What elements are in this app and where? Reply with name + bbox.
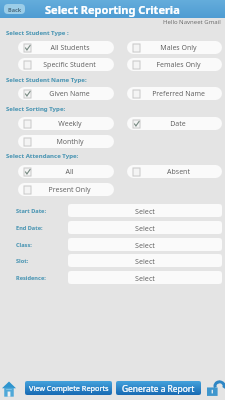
button[interactable]: Class: <box>0 238 225 251</box>
button[interactable]: Residence: <box>0 271 225 284</box>
button[interactable]: View Complete Reports <box>25 381 112 395</box>
button[interactable]: All <box>18 165 114 178</box>
button[interactable]: Slot: <box>0 254 225 267</box>
staticText: Select Sorting Type: <box>6 105 66 113</box>
staticText: Present Only <box>48 185 91 195</box>
button[interactable]: Specific Student <box>18 58 114 71</box>
button[interactable]: Generate a Report <box>116 381 201 395</box>
staticText: All Students <box>50 43 90 53</box>
button[interactable]: Home <box>1 380 16 397</box>
button[interactable]: End Date: <box>0 221 225 234</box>
staticText: Select Reporting Criteria <box>45 2 180 17</box>
staticText: Date <box>170 119 186 129</box>
staticText: End Date: <box>16 224 68 232</box>
staticText: Select <box>135 206 155 216</box>
staticText: Select <box>135 223 155 233</box>
staticText: Select <box>135 273 155 283</box>
staticText: All <box>65 167 74 177</box>
staticText: Select <box>135 256 155 266</box>
button[interactable]: Preferred Name <box>127 87 222 100</box>
staticText: Select Student Name Type: <box>6 76 87 84</box>
staticText: Weekly <box>58 119 82 129</box>
button[interactable]: Given Name <box>18 87 114 100</box>
button[interactable]: Females Only <box>127 58 222 71</box>
staticText: Residence: <box>16 274 68 282</box>
staticText: Select Student Type : <box>6 29 69 37</box>
staticText: Generate a Report <box>122 383 195 394</box>
staticText: Absent <box>167 167 190 177</box>
staticText: Specific Student <box>43 60 96 70</box>
button[interactable]: Date <box>127 117 222 130</box>
staticText: Select Attendance Type: <box>6 152 79 160</box>
button[interactable]: Unlock <box>204 379 225 397</box>
staticText: Select <box>135 240 155 250</box>
button[interactable]: Start Date: <box>0 204 225 217</box>
staticText: Slot: <box>16 257 68 265</box>
staticText: Given Name <box>49 89 90 99</box>
staticText: Preferred Name <box>152 89 205 99</box>
staticText: View Complete Reports <box>29 383 109 393</box>
button[interactable]: Males Only <box>127 41 222 54</box>
staticText: Monthly <box>56 137 84 147</box>
button[interactable]: All Students <box>18 41 114 54</box>
button[interactable]: Back <box>4 4 25 14</box>
staticText: Back <box>8 6 22 13</box>
staticText: Females Only <box>156 60 201 70</box>
staticText: Class: <box>16 241 68 249</box>
button[interactable]: Present Only <box>18 183 114 196</box>
staticText: Hello Navneet Gmail <box>163 18 221 26</box>
staticText: Start Date: <box>16 207 68 215</box>
button[interactable]: Monthly <box>18 135 114 148</box>
button[interactable]: Absent <box>127 165 222 178</box>
staticText: Males Only <box>160 43 197 53</box>
button[interactable]: Weekly <box>18 117 114 130</box>
